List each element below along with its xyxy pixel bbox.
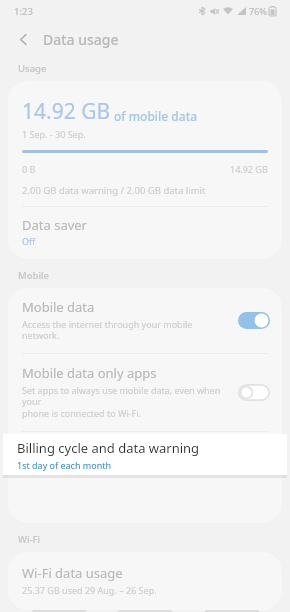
button[interactable]: Mobile data only apps <box>8 354 282 431</box>
staticText: Billing cycle and data warning <box>17 439 200 457</box>
staticText: Data saver <box>22 216 87 234</box>
button[interactable]: Back <box>12 28 34 50</box>
staticText: Mobile <box>18 269 49 282</box>
staticText: 0 B <box>22 163 36 175</box>
staticText: Wi-Fi <box>18 533 41 546</box>
staticText: Wi-Fi data usage <box>22 564 123 582</box>
staticText: 14.92 GB used 1 – 30 Sep. <box>22 461 130 473</box>
staticText: Off <box>22 235 36 247</box>
button[interactable]: Mobile data usage <box>8 432 282 483</box>
staticText: 14.92 GB <box>230 163 268 175</box>
staticText: Usage <box>18 62 47 75</box>
staticText: Mobile data <box>22 298 95 316</box>
staticText: 1st day of each month <box>17 459 112 471</box>
staticText: 14.92 GB <box>22 97 111 126</box>
button[interactable]: Wi-Fi data usage <box>8 552 282 610</box>
button[interactable]: Navigation button <box>31 610 87 612</box>
button[interactable]: Billing cycle and data warning <box>3 434 287 475</box>
staticText: Mobile data usage <box>22 441 135 459</box>
button[interactable]: Mobile data <box>8 288 282 353</box>
staticText: 76% <box>249 5 267 17</box>
staticText: Mobile data only apps <box>22 364 157 382</box>
staticText: 25.37 GB used 29 Aug. – 26 Sep. <box>22 584 157 596</box>
button[interactable]: Data saver <box>8 207 282 259</box>
button[interactable]: 14.92 GB <box>8 81 282 206</box>
staticText: Data usage <box>43 30 119 49</box>
button[interactable]: Toggle on <box>238 312 270 329</box>
staticText: Set apps to always use mobile data, even… <box>22 384 230 420</box>
staticText: Access the internet through your mobile … <box>22 318 230 342</box>
button[interactable]: Toggle off <box>238 384 270 401</box>
staticText: 1 Sep. - 30 Sep. <box>22 128 86 140</box>
button[interactable]: Navigation button <box>117 610 173 612</box>
staticText: 1:23 <box>14 5 33 18</box>
staticText: 2.00 GB data warning / 2.00 GB data limi… <box>22 184 206 197</box>
button[interactable]: Navigation button <box>204 610 260 612</box>
staticText: of mobile data <box>114 108 198 124</box>
